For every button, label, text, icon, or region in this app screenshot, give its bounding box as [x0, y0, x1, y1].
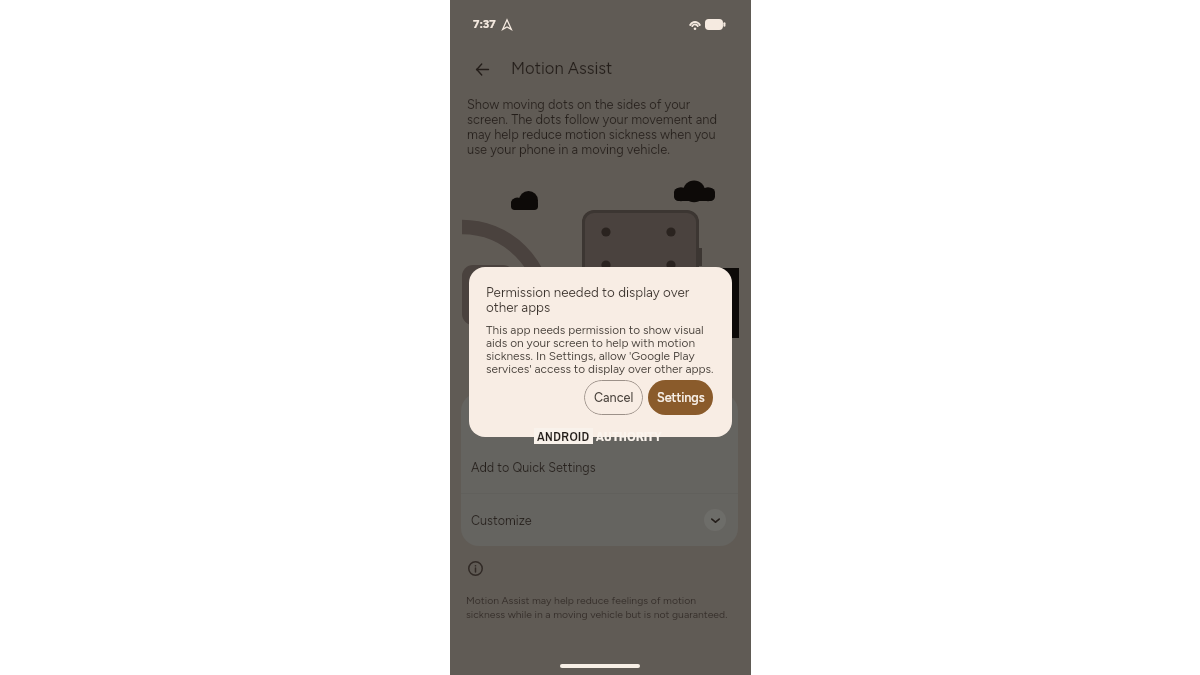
- button[interactable]: Cancel: [584, 380, 643, 415]
- staticText: AUTHORITY: [596, 428, 662, 444]
- staticText: Customize: [471, 513, 532, 528]
- button[interactable]: Back: [461, 48, 503, 90]
- button[interactable]: Add to Quick Settings: [461, 442, 738, 493]
- staticText: Add to Quick Settings: [471, 460, 596, 475]
- staticText: This app needs permission to show visual…: [486, 323, 718, 376]
- staticText: Settings: [657, 390, 705, 405]
- staticText: ANDROID: [537, 428, 590, 444]
- button[interactable]: Customize: [461, 494, 738, 546]
- staticText: Permission needed to display over other …: [486, 284, 718, 316]
- staticText: 7:37: [473, 17, 496, 31]
- staticText: Cancel: [594, 390, 634, 405]
- staticText: Motion Assist: [511, 58, 613, 78]
- staticText: Motion Assist may help reduce feelings o…: [466, 594, 734, 620]
- staticText: Show moving dots on the sides of your sc…: [467, 97, 725, 157]
- button[interactable]: Settings: [648, 380, 713, 415]
